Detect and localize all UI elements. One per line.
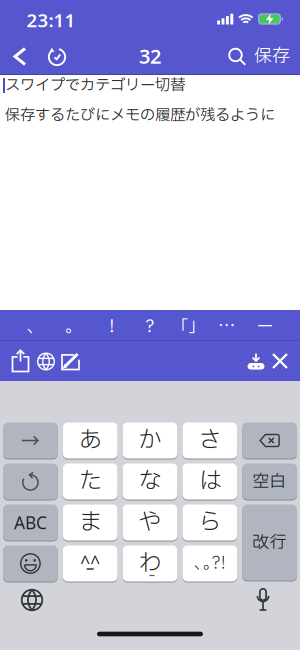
button[interactable]: Save draft: [244, 350, 268, 371]
button[interactable]: 、: [16, 311, 54, 340]
staticText: ら: [198, 505, 221, 540]
button[interactable]: Back: [7, 42, 33, 70]
button[interactable]: History: [42, 41, 72, 71]
button[interactable]: か: [123, 422, 177, 459]
button[interactable]: Cursor right: [3, 422, 58, 459]
staticText: 「」: [171, 314, 205, 340]
staticText: わ: [138, 546, 161, 581]
staticText: な: [138, 464, 161, 499]
staticText: 保存: [254, 43, 290, 70]
button[interactable]: Search: [223, 43, 250, 70]
button[interactable]: Share: [9, 347, 31, 374]
button[interactable]: ま: [63, 504, 118, 541]
button[interactable]: さ: [182, 422, 237, 459]
button[interactable]: 保存: [250, 39, 294, 74]
button[interactable]: ､｡?!: [182, 545, 237, 582]
button[interactable]: わ: [123, 545, 177, 582]
staticText: ま: [79, 505, 102, 540]
button[interactable]: Next keyboard: [17, 585, 47, 615]
button[interactable]: …: [207, 311, 246, 340]
button[interactable]: !: [93, 311, 131, 340]
button[interactable]: ^^: [63, 545, 118, 582]
button[interactable]: Close keyboard: [270, 351, 290, 371]
staticText: 保存するたびにメモの履歴が残るように: [5, 104, 275, 127]
staticText: ､｡?!: [194, 550, 226, 576]
staticText: は: [198, 464, 221, 499]
button[interactable]: Language: [35, 350, 57, 372]
button[interactable]: New note: [59, 349, 82, 372]
staticText: 。: [65, 314, 82, 340]
button[interactable]: ー: [246, 311, 284, 340]
button[interactable]: ABC: [3, 504, 58, 541]
staticText: 32: [139, 43, 161, 69]
button[interactable]: 空白: [242, 463, 297, 500]
staticText: ー: [256, 314, 273, 340]
button[interactable]: ?: [131, 311, 169, 340]
staticText: か: [138, 423, 161, 458]
staticText: ABC: [14, 511, 47, 534]
button[interactable]: Delete: [242, 422, 297, 459]
staticText: …: [218, 314, 235, 340]
button[interactable]: な: [123, 463, 177, 500]
button[interactable]: 「」: [169, 311, 207, 340]
button[interactable]: ら: [182, 504, 237, 541]
button[interactable]: や: [123, 504, 177, 541]
staticText: や: [138, 505, 161, 540]
staticText: スワイプでカテゴリー切替: [5, 74, 185, 97]
staticText: あ: [79, 423, 102, 458]
staticText: さ: [198, 423, 221, 458]
button[interactable]: は: [182, 463, 237, 500]
button[interactable]: Emoji: [3, 545, 58, 582]
button[interactable]: あ: [63, 422, 118, 459]
button[interactable]: Undo: [3, 463, 58, 500]
staticText: ^^: [80, 551, 100, 574]
staticText: 空白: [253, 469, 287, 494]
staticText: た: [79, 464, 102, 499]
staticText: !: [109, 314, 114, 340]
staticText: 改行: [253, 530, 287, 555]
button[interactable]: 。: [54, 311, 93, 340]
staticText: 23:11: [26, 8, 75, 32]
staticText: ?: [145, 314, 154, 340]
button[interactable]: た: [63, 463, 118, 500]
staticText: 、: [27, 314, 44, 340]
button[interactable]: 改行: [242, 504, 297, 581]
button[interactable]: Dictate: [251, 584, 275, 616]
